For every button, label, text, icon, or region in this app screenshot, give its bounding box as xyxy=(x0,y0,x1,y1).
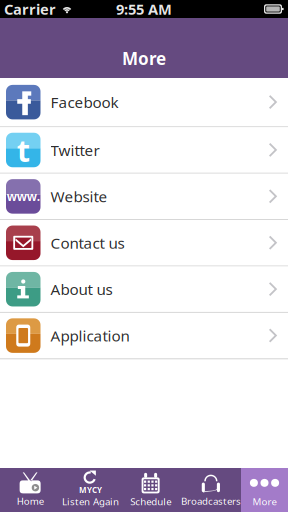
button[interactable]: t xyxy=(0,127,288,174)
staticText: 9:55 AM xyxy=(116,0,172,19)
button[interactable]: MYCY xyxy=(60,468,120,512)
staticText: MYCY xyxy=(79,485,102,495)
button[interactable]: About us xyxy=(0,266,288,313)
button[interactable]: Facebook xyxy=(0,78,288,127)
staticText: Application xyxy=(50,325,129,346)
staticText: More xyxy=(252,495,276,508)
staticText: Schedule xyxy=(130,495,171,508)
staticText: Website xyxy=(50,186,107,207)
button[interactable]: Broadcasters xyxy=(181,468,241,512)
button[interactable]: More xyxy=(241,468,288,512)
staticText: Home xyxy=(17,494,44,508)
staticText: Contact us xyxy=(50,232,124,253)
staticText: Listen Again xyxy=(62,495,119,508)
staticText: Carrier xyxy=(4,0,56,19)
staticText: Broadcasters xyxy=(181,494,241,508)
button[interactable]: Contact us xyxy=(0,220,288,266)
staticText: About us xyxy=(50,279,112,299)
button[interactable]: Application xyxy=(0,313,288,359)
staticText: Twitter xyxy=(50,140,99,160)
staticText: More xyxy=(122,47,166,70)
button[interactable]: www. xyxy=(0,174,288,220)
button[interactable]: Home xyxy=(0,468,60,512)
button[interactable]: Schedule xyxy=(120,468,181,512)
staticText: Facebook xyxy=(50,92,118,112)
staticText: www. xyxy=(7,188,40,204)
staticText: t xyxy=(17,130,30,170)
